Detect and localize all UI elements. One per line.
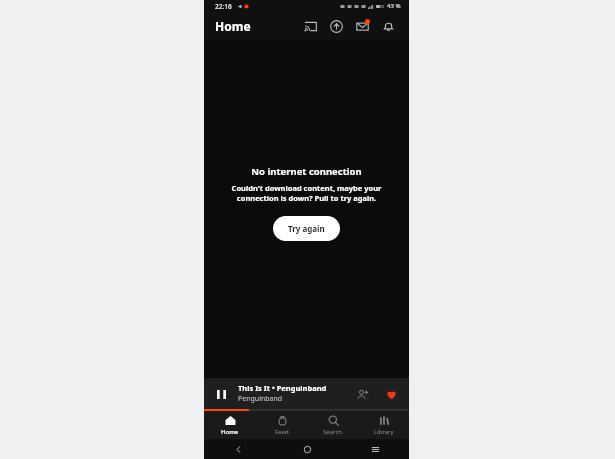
button[interactable]: Inbox	[352, 16, 372, 36]
button[interactable]: Try again	[273, 216, 340, 241]
staticText: Search	[323, 428, 342, 436]
button[interactable]: Back	[204, 439, 273, 459]
button[interactable]: Upload	[326, 16, 346, 36]
button[interactable]: Feed	[256, 411, 307, 439]
button[interactable]: Library	[358, 411, 409, 439]
staticText: 43 %	[387, 2, 401, 10]
staticText: Try again	[288, 223, 325, 234]
staticText: Feed	[275, 428, 289, 436]
staticText: Couldn't download content, maybe your co…	[216, 183, 397, 203]
staticText: Home	[215, 18, 251, 34]
staticText: Library	[374, 428, 394, 436]
staticText: Penguinband	[238, 394, 283, 404]
button[interactable]: Follow artist	[353, 385, 371, 403]
staticText: This Is It • Penguinband	[238, 383, 327, 393]
button[interactable]: Pause	[213, 386, 229, 402]
staticText: Home	[221, 428, 239, 436]
button[interactable]: Like	[382, 385, 400, 403]
button[interactable]: Recent apps	[341, 439, 409, 459]
button[interactable]: Cast	[300, 16, 320, 36]
staticText: 22:16	[215, 2, 232, 11]
button[interactable]: Search	[307, 411, 358, 439]
button[interactable]: Home	[204, 411, 256, 439]
button[interactable]: Home	[273, 439, 341, 459]
button[interactable]: Notifications	[378, 16, 398, 36]
button[interactable]: Pause	[204, 378, 409, 409]
staticText: No internet connection	[251, 165, 362, 178]
